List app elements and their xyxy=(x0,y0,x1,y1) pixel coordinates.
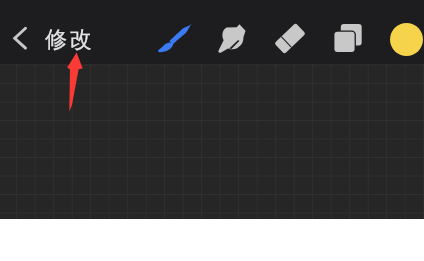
button[interactable]: Drawing canvas xyxy=(0,64,424,219)
button[interactable]: Back xyxy=(6,20,40,54)
button[interactable]: Colour xyxy=(390,23,423,56)
staticText: 修改 xyxy=(45,25,95,53)
button[interactable]: Pen xyxy=(214,21,248,55)
button[interactable]: Brush xyxy=(155,21,193,59)
button[interactable]: Eraser xyxy=(272,23,306,57)
button[interactable]: Layers xyxy=(334,24,362,52)
